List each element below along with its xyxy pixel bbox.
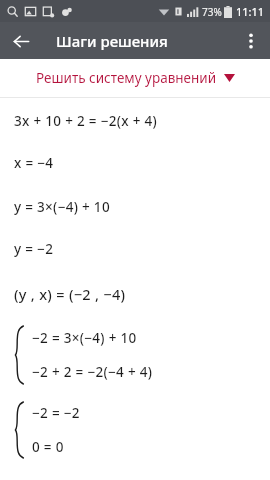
staticText: 11:11 — [236, 4, 265, 19]
staticText: (y , x) = (−2 , −4) — [14, 284, 126, 304]
staticText: Шаги решения — [56, 31, 168, 51]
staticText: −2 = 3×(−4) + 10 — [32, 329, 137, 347]
staticText: y = −2 — [14, 240, 54, 258]
staticText: x = −4 — [14, 154, 54, 172]
button[interactable]: Решить систему уравнений — [0, 59, 270, 97]
staticText: y = 3×(−4) + 10 — [14, 198, 110, 216]
staticText: Решить систему уравнений — [36, 69, 217, 87]
staticText: 0 = 0 — [32, 438, 64, 456]
staticText: 3x + 10 + 2 = −2(x + 4) — [14, 112, 158, 130]
staticText: −2 + 2 = −2(−4 + 4) — [32, 363, 153, 381]
staticText: −2 = −2 — [32, 404, 80, 422]
button[interactable]: Назад — [6, 26, 36, 56]
button[interactable]: Ещё — [236, 26, 266, 56]
staticText: 73% — [202, 5, 222, 19]
